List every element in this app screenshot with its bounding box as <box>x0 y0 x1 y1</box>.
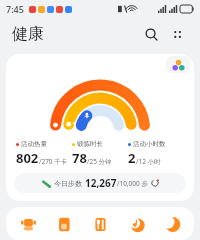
button[interactable]: Records <box>50 210 78 238</box>
button[interactable]: 活动小时数 <box>128 140 184 167</box>
staticText: 健康 <box>12 24 44 44</box>
button[interactable]: Music <box>122 210 150 238</box>
staticText: 活动热量 <box>21 140 47 148</box>
staticText: 7:45 <box>6 3 24 15</box>
staticText: 活动小时数 <box>133 140 166 148</box>
button[interactable]: Diet <box>86 210 114 238</box>
button[interactable]: Search <box>138 21 164 47</box>
staticText: 锻炼时长 <box>77 140 103 148</box>
staticText: /270 千卡 <box>39 157 68 166</box>
button[interactable]: More options <box>164 21 190 47</box>
staticText: /10,000 步 <box>117 179 148 188</box>
button[interactable]: 锻炼时长 <box>72 140 128 167</box>
button[interactable]: Workout <box>14 210 42 238</box>
staticText: 12,267 <box>85 176 117 190</box>
staticText: 2 <box>128 149 136 167</box>
button[interactable]: 活动热量 <box>16 140 72 167</box>
button[interactable]: Sleep <box>158 210 186 238</box>
button[interactable]: 今日步数 <box>14 173 186 193</box>
staticText: 802 <box>16 149 39 167</box>
staticText: 78 <box>72 149 87 167</box>
button[interactable]: Badges <box>166 56 190 73</box>
staticText: /25 分钟 <box>87 157 112 166</box>
button[interactable]: Badges <box>6 54 194 201</box>
staticText: /12 小时 <box>136 157 161 166</box>
staticText: 今日步数 <box>54 179 82 188</box>
